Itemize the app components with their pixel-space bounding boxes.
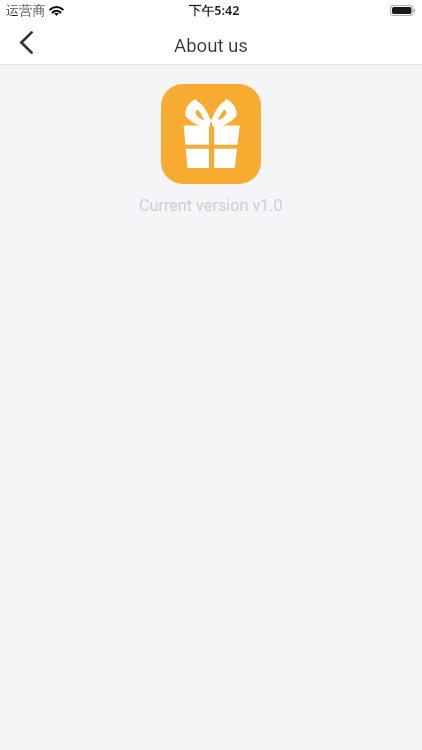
staticText: 下午5:42 — [189, 2, 240, 19]
button[interactable]: Back — [4, 20, 49, 65]
staticText: Current version v1.0 — [139, 196, 283, 215]
staticText: 运营商 — [6, 2, 46, 19]
staticText: About us — [174, 35, 248, 57]
